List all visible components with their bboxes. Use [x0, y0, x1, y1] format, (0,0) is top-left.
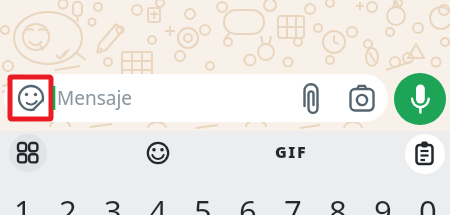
- button[interactable]: GIF: [269, 141, 313, 163]
- button[interactable]: 1: [0, 188, 45, 215]
- button[interactable]: [10, 77, 51, 119]
- staticText: 2: [59, 190, 77, 215]
- staticText: 1: [14, 190, 32, 215]
- button[interactable]: [296, 82, 328, 116]
- staticText: 5: [194, 190, 212, 215]
- button[interactable]: [4, 74, 388, 122]
- staticText: 9: [374, 190, 392, 215]
- staticText: Mensaje: [57, 85, 133, 111]
- staticText: 8: [329, 190, 347, 215]
- button[interactable]: 8: [315, 188, 360, 215]
- staticText: 0: [419, 190, 437, 215]
- button[interactable]: 0: [405, 188, 450, 215]
- staticText: 3: [104, 190, 122, 215]
- button[interactable]: [394, 73, 446, 125]
- staticText: GIF: [275, 141, 308, 163]
- button[interactable]: 5: [180, 188, 225, 215]
- button[interactable]: 2: [45, 188, 90, 215]
- staticText: 7: [284, 190, 302, 215]
- button[interactable]: 9: [360, 188, 405, 215]
- staticText: 4: [149, 190, 167, 215]
- button[interactable]: 7: [270, 188, 315, 215]
- button[interactable]: [346, 82, 378, 116]
- button[interactable]: [144, 137, 175, 168]
- button[interactable]: [9, 134, 47, 172]
- button[interactable]: 3: [90, 188, 135, 215]
- button[interactable]: 6: [225, 188, 270, 215]
- staticText: 6: [239, 190, 257, 215]
- button[interactable]: 4: [135, 188, 180, 215]
- button[interactable]: [405, 134, 445, 174]
